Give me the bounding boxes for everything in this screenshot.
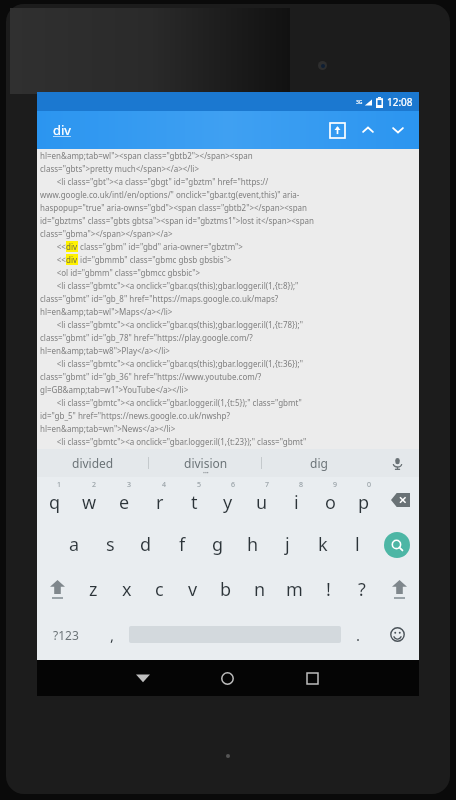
staticText: id="gbmmb" class="gbmc gbsb gbsbis">	[78, 254, 232, 265]
staticText: div	[53, 121, 71, 139]
staticText: a	[69, 532, 80, 557]
button[interactable]: Previous	[353, 115, 383, 145]
button[interactable]: div	[51, 117, 73, 143]
button[interactable]: 4	[142, 477, 177, 522]
button[interactable]: ,	[95, 612, 129, 657]
button[interactable]: a	[56, 522, 92, 567]
staticText: haspopup="true" aria-owns="gbd"><span cl…	[40, 202, 308, 213]
button[interactable]: v	[176, 567, 209, 612]
button[interactable]: 9	[313, 477, 347, 522]
staticText: l	[355, 532, 360, 557]
button[interactable]: l	[340, 522, 375, 567]
button[interactable]: Back	[100, 660, 185, 696]
button[interactable]: ?	[345, 567, 379, 612]
button[interactable]: 2	[72, 477, 107, 522]
staticText: w	[82, 490, 97, 515]
staticText: 3G	[356, 99, 363, 106]
button[interactable]: Recent apps	[270, 660, 355, 696]
staticText: div	[66, 241, 78, 252]
staticText: hl=en&amp;tab=wl"><span class="gbtb2"></…	[40, 150, 253, 161]
staticText: y	[223, 490, 233, 515]
staticText: 6	[231, 480, 236, 490]
staticText: <li class="gbmtc"><a onclick="gbar.qs(th…	[40, 358, 303, 369]
staticText: b	[220, 577, 232, 602]
staticText: ?123	[53, 627, 79, 643]
staticText: 9	[333, 480, 338, 490]
button[interactable]: Shift	[37, 567, 77, 612]
staticText: c	[155, 577, 164, 602]
staticText: hl=en&amp;tab=wn">News</a></li>	[40, 423, 176, 434]
button[interactable]: s	[92, 522, 128, 567]
button[interactable]: ?123	[37, 612, 95, 657]
button[interactable]: k	[305, 522, 340, 567]
button[interactable]: g	[200, 522, 235, 567]
button[interactable]: 0	[347, 477, 381, 522]
staticText: ?	[358, 577, 366, 602]
button[interactable]: 1	[37, 477, 72, 522]
button[interactable]: Backspace	[381, 477, 419, 522]
staticText: www.google.co.uk/intl/en/options/" oncli…	[40, 189, 300, 200]
staticText: j	[285, 532, 290, 557]
staticText: d	[140, 532, 152, 557]
button[interactable]: c	[143, 567, 176, 612]
staticText: 2	[92, 480, 97, 490]
button[interactable]: z	[77, 567, 110, 612]
staticText: 5	[197, 480, 202, 490]
staticText: class="gbts">pretty much</span></a></li>	[40, 163, 199, 174]
button[interactable]: division	[149, 449, 262, 477]
staticText: •••	[203, 470, 209, 477]
button[interactable]: Emoji	[375, 612, 419, 657]
button[interactable]: n	[243, 567, 277, 612]
button[interactable]: Shift	[379, 567, 419, 612]
staticText: class="gbmt" id="gb_36" href="https://ww…	[40, 371, 262, 382]
button[interactable]: divided	[37, 449, 149, 477]
staticText: class="gbm" id="gbd" aria-owner="gbztm">	[78, 241, 243, 252]
staticText: 3	[127, 480, 132, 490]
staticText: <<	[40, 254, 66, 265]
button[interactable]: h	[235, 522, 270, 567]
button[interactable]: Voice input	[375, 449, 419, 477]
staticText: t	[191, 490, 198, 515]
button[interactable]: 7	[245, 477, 279, 522]
staticText: ,	[110, 625, 115, 645]
staticText: s	[106, 532, 115, 557]
staticText: class="gbmt" id="gb_8" href="https://map…	[40, 293, 279, 304]
button[interactable]: 3	[107, 477, 142, 522]
button[interactable]: dig	[262, 449, 375, 477]
button[interactable]: j	[270, 522, 305, 567]
staticText: f	[179, 532, 186, 557]
button[interactable]: x	[110, 567, 143, 612]
staticText: v	[188, 577, 198, 602]
button[interactable]: d	[128, 522, 164, 567]
staticText: r	[156, 490, 164, 515]
button[interactable]: f	[164, 522, 200, 567]
button[interactable]: Next	[383, 115, 413, 145]
button[interactable]: 8	[279, 477, 313, 522]
button[interactable]: !	[311, 567, 345, 612]
staticText: p	[358, 490, 370, 515]
staticText: id="gbztms" class="gbts gbtsa"><span id=…	[40, 215, 315, 226]
button[interactable]: m	[277, 567, 311, 612]
button[interactable]: Home	[185, 660, 270, 696]
staticText: z	[89, 577, 98, 602]
staticText: k	[318, 532, 328, 557]
staticText: u	[256, 490, 268, 515]
staticText: 12:08	[387, 95, 413, 109]
button[interactable]: .	[341, 612, 375, 657]
button[interactable]: Space	[129, 624, 341, 645]
staticText: <li class="gbmtc"><a onclick="gbar.qs(th…	[40, 280, 299, 291]
button[interactable]: Open in browser	[321, 114, 353, 146]
button[interactable]: Search	[375, 522, 419, 567]
staticText: h	[247, 532, 259, 557]
staticText: g	[212, 532, 224, 557]
button[interactable]: b	[209, 567, 243, 612]
staticText: <li class="gbt"><a class="gbgt" id="gbzt…	[40, 176, 269, 187]
button[interactable]: 5	[177, 477, 211, 522]
staticText: m	[286, 577, 303, 602]
button[interactable]: 6	[211, 477, 245, 522]
staticText: hl=en&amp;tab=wl">Maps</a></li>	[40, 306, 173, 317]
staticText: <<	[40, 241, 66, 252]
staticText: divided	[72, 455, 114, 471]
staticText: dig	[310, 455, 328, 471]
staticText: 0	[367, 480, 372, 490]
